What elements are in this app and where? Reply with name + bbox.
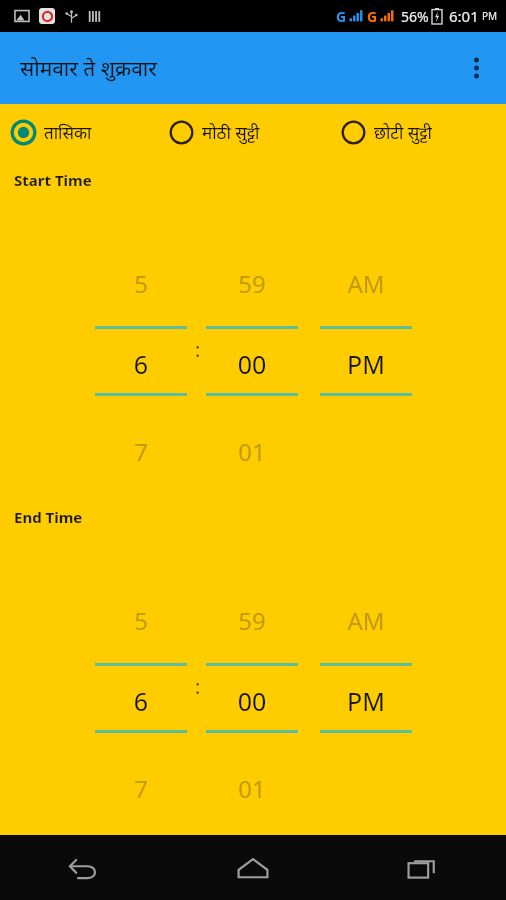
button[interactable]: 59 (206, 241, 298, 447)
staticText: 00 (206, 347, 298, 381)
staticText: 6 (95, 347, 187, 381)
button[interactable]: 5 (95, 241, 187, 447)
staticText: 56% (401, 7, 429, 26)
staticText: तासिका (44, 121, 92, 144)
staticText: सोमवार ते शुक्रवार (20, 54, 157, 83)
staticText: AM (320, 267, 412, 300)
staticText: AM (320, 604, 412, 637)
staticText: 6:01 (449, 6, 479, 26)
button[interactable]: छोटी सुट्टी (340, 110, 506, 154)
staticText: छोटी सुट्टी (374, 121, 432, 144)
staticText: 59 (206, 604, 298, 637)
staticText: मोठी सुट्टी (202, 121, 260, 144)
staticText: 00 (206, 684, 298, 718)
button[interactable]: 59 (206, 578, 298, 784)
staticText: Start Time (14, 170, 92, 190)
staticText: 01 (206, 435, 298, 468)
button[interactable]: तासिका (10, 110, 168, 154)
staticText: 6 (95, 684, 187, 718)
button[interactable]: More options (452, 44, 500, 92)
staticText: End Time (14, 507, 83, 527)
staticText: : (195, 336, 201, 363)
button[interactable]: मोठी सुट्टी (168, 110, 340, 154)
staticText: PM (320, 684, 412, 718)
staticText: 7 (95, 435, 187, 468)
button[interactable]: Home (213, 835, 293, 900)
staticText: PM (320, 347, 412, 381)
button[interactable]: Back (44, 835, 124, 900)
staticText: 5 (95, 267, 187, 300)
staticText: 5 (95, 604, 187, 637)
staticText: 01 (206, 772, 298, 805)
staticText: 7 (95, 772, 187, 805)
button[interactable]: 5 (95, 578, 187, 784)
button[interactable]: AM (320, 241, 412, 447)
staticText: G (336, 7, 347, 26)
staticText: 59 (206, 267, 298, 300)
staticText: G (367, 7, 378, 26)
button[interactable]: Recent apps (382, 835, 462, 900)
staticText: PM (482, 9, 498, 23)
staticText: : (195, 673, 201, 700)
button[interactable]: AM (320, 578, 412, 784)
